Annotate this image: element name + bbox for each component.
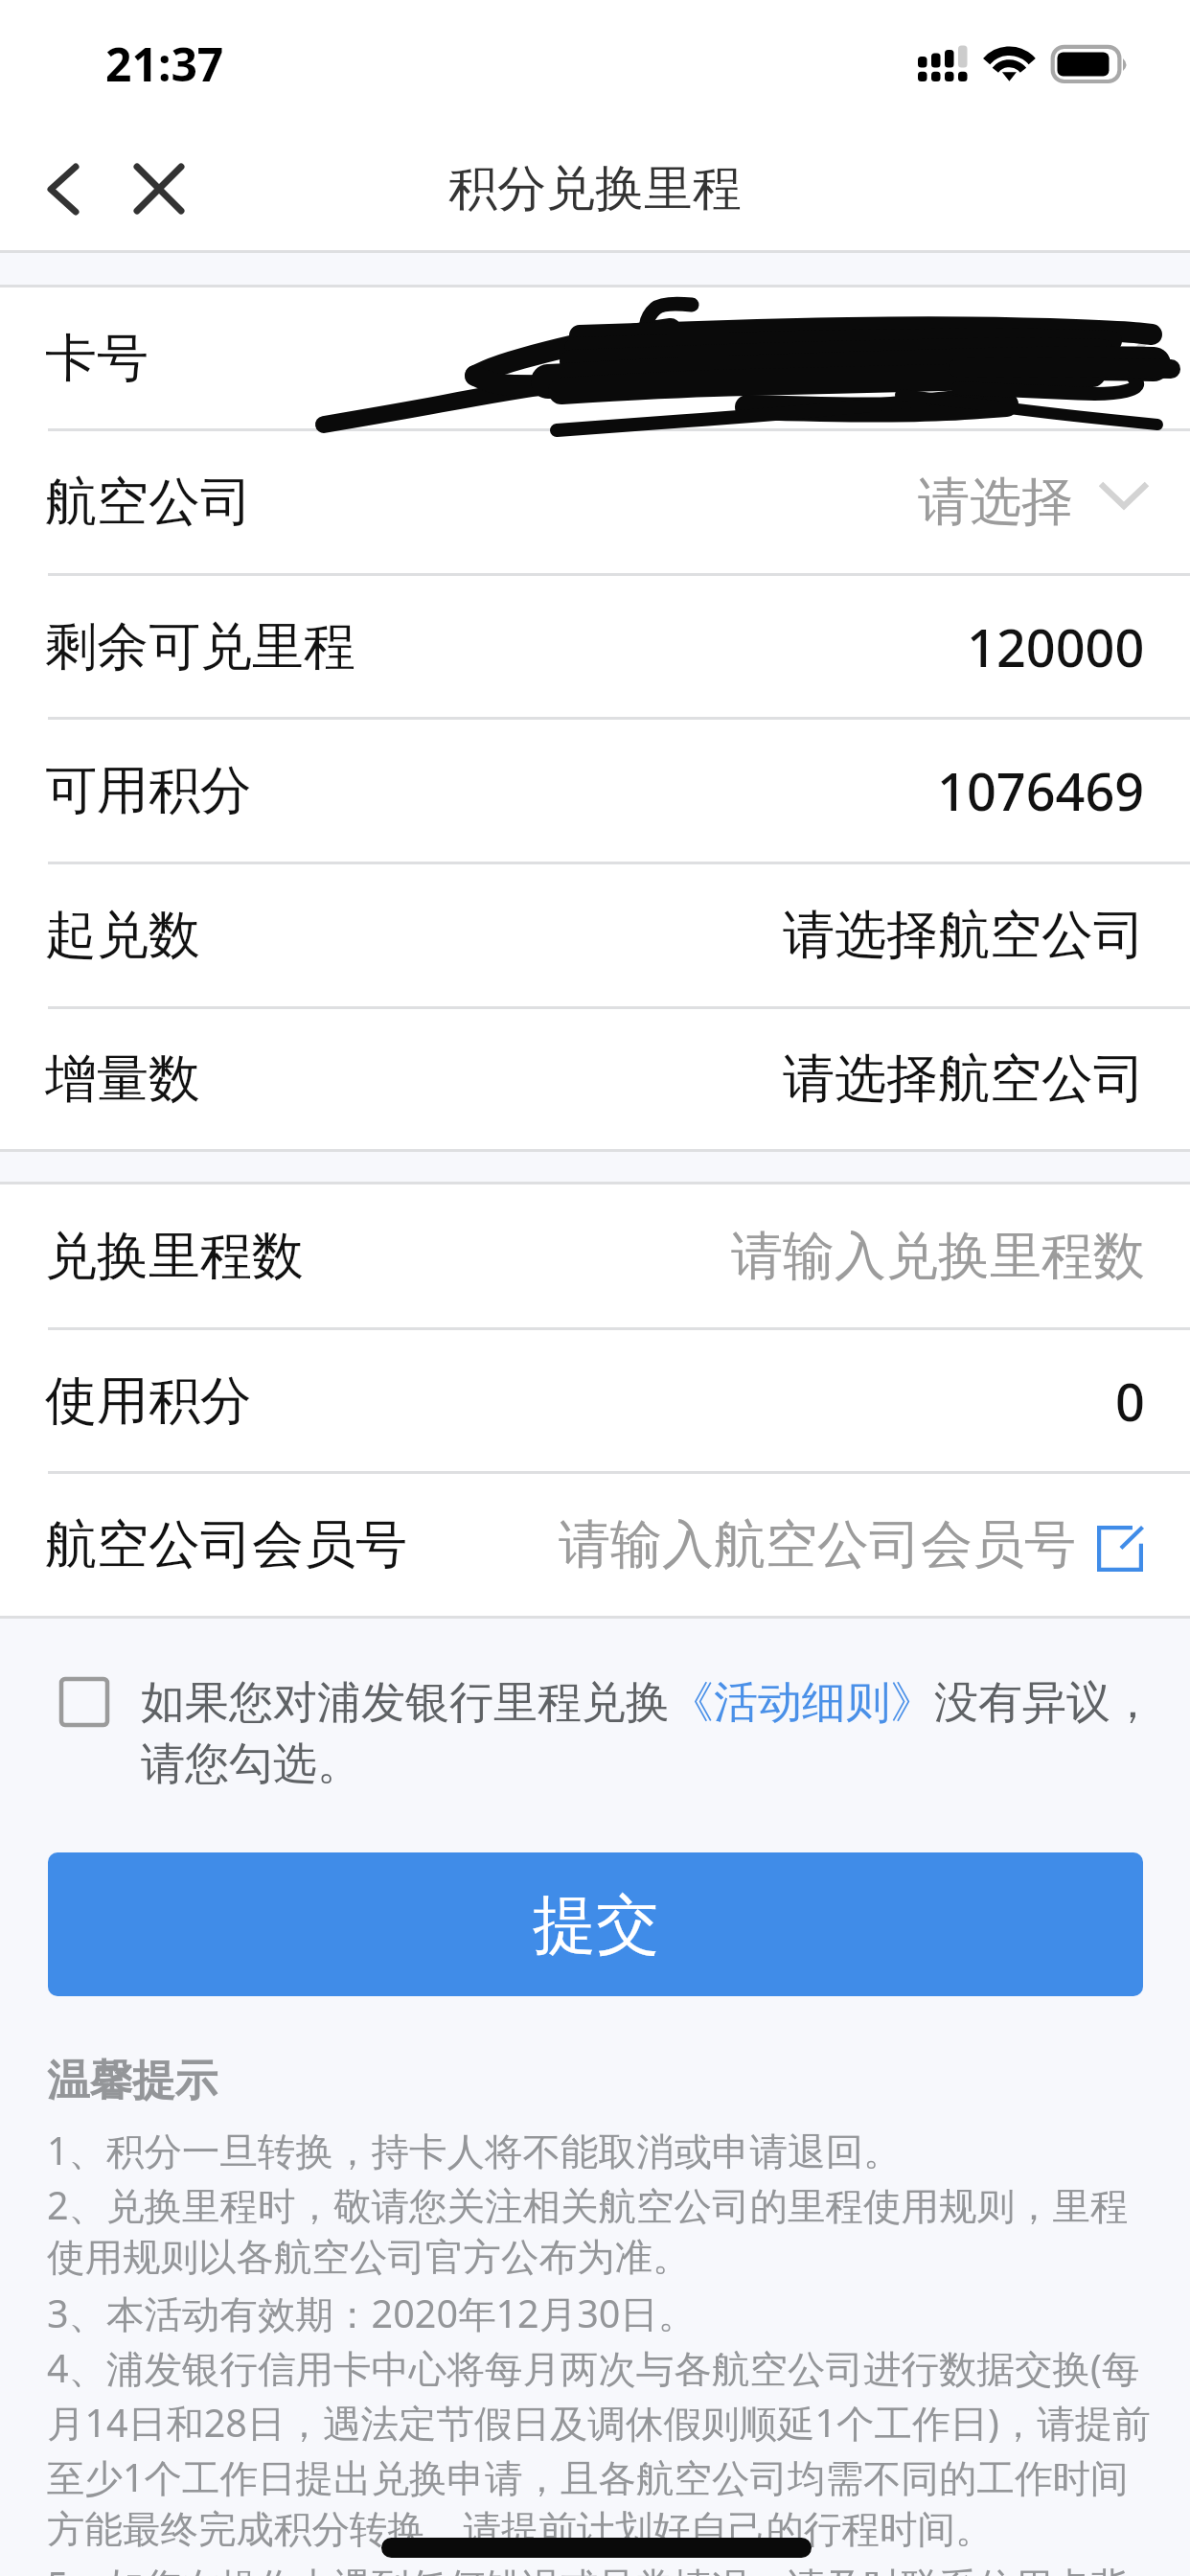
- staticText: 使用积分: [45, 1368, 252, 1434]
- button[interactable]: 兑换里程数: [0, 1184, 1190, 1327]
- button[interactable]: 起兑数: [0, 864, 1190, 1006]
- staticText: 请选择: [918, 470, 1073, 535]
- staticText: 积分兑换里程: [448, 158, 742, 219]
- other: 展开: [1097, 336, 1151, 367]
- other: 编辑: [1097, 1526, 1143, 1572]
- staticText: 提交: [533, 1885, 659, 1965]
- button[interactable]: 提交: [48, 1852, 1143, 1996]
- staticText: 请输入航空公司会员号: [559, 1512, 1076, 1577]
- staticText: 120000: [967, 611, 1145, 682]
- staticText: 2、兑换里程时，敬请您关注相关航空公司的里程使用规则，里程: [47, 2179, 1129, 2231]
- staticText: 请您勾选。: [141, 1736, 361, 1792]
- button[interactable]: 勾选同意活动细则: [48, 1663, 1145, 1797]
- staticText: 航空公司: [45, 470, 252, 535]
- staticText: 方能最终完成积分转换，请提前计划好自己的行程时间。: [47, 2506, 994, 2554]
- staticText: 月14日和28日，遇法定节假日及调休假则顺延1个工作日)，请提前: [47, 2397, 1151, 2449]
- button[interactable]: 关闭: [115, 136, 203, 241]
- staticText: 温馨提示: [47, 2054, 217, 2107]
- staticText: 1、积分一旦转换，持卡人将不能取消或申请退回。: [47, 2125, 902, 2176]
- staticText: 剩余可兑里程: [45, 614, 355, 679]
- staticText: 使用规则以各航空公司官方公布为准。: [47, 2234, 691, 2282]
- staticText: 请选择航空公司: [783, 1046, 1145, 1112]
- button[interactable]: 剩余可兑里程: [0, 576, 1190, 717]
- button[interactable]: 航空公司会员号: [0, 1474, 1190, 1616]
- button[interactable]: 增量数: [0, 1009, 1190, 1149]
- staticText: 增量数: [45, 1046, 200, 1112]
- staticText: 起兑数: [45, 903, 200, 968]
- staticText: 21:37: [105, 33, 224, 95]
- staticText: 卡号: [45, 326, 149, 391]
- staticText: 3、本活动有效期：2020年12月30日。: [47, 2288, 697, 2339]
- staticText: 航空公司会员号: [45, 1512, 407, 1577]
- staticText: 请选择航空公司: [783, 903, 1145, 968]
- other: 展开: [1097, 480, 1151, 511]
- button[interactable]: 卡号: [0, 287, 1190, 428]
- button[interactable]: 使用积分: [0, 1330, 1190, 1471]
- button[interactable]: 航空公司: [0, 431, 1190, 573]
- staticText: 如果您对浦发银行里程兑换《活动细则》没有异议，: [141, 1675, 1155, 1731]
- staticText: 至少1个工作日提出兑换申请，且各航空公司均需不同的工作时间: [47, 2451, 1129, 2503]
- staticText: 可用积分: [45, 758, 252, 823]
- button[interactable]: 可用积分: [0, 720, 1190, 862]
- staticText: 5、如您在操作中遇到任何错误或异常情况，请及时联系信用卡背: [47, 2560, 1129, 2576]
- button[interactable]: 返回: [19, 136, 107, 241]
- staticText: 1076469: [937, 755, 1145, 826]
- staticText: 4、浦发银行信用卡中心将每月两次与各航空公司进行数据交换(每: [47, 2342, 1140, 2394]
- staticText: 请输入兑换里程数: [731, 1224, 1145, 1289]
- staticText: 兑换里程数: [45, 1224, 304, 1289]
- staticText: 0: [1115, 1366, 1145, 1437]
